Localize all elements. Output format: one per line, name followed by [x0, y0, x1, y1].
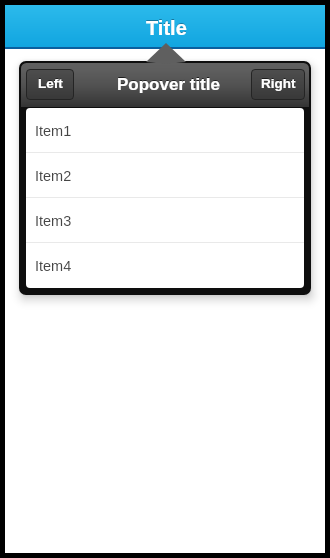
button[interactable]: Item1	[26, 108, 304, 153]
staticText: Item1	[35, 123, 72, 139]
staticText: Right	[261, 76, 296, 91]
staticText: Item4	[35, 258, 72, 274]
staticText: Title	[146, 17, 187, 39]
button[interactable]: Title	[5, 5, 325, 47]
button[interactable]: Right	[251, 69, 305, 100]
button[interactable]: Item4	[26, 243, 304, 288]
staticText: Item2	[35, 168, 72, 184]
staticText: Popover title	[117, 75, 220, 94]
button[interactable]: Left	[26, 69, 74, 100]
button[interactable]: Item3	[26, 198, 304, 243]
staticText: Left	[38, 76, 63, 91]
button[interactable]: Item2	[26, 153, 304, 198]
staticText: Item3	[35, 213, 72, 229]
